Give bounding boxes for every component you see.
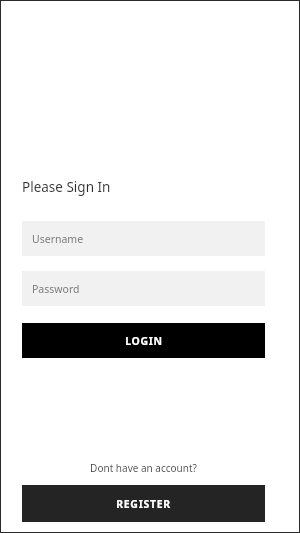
- button[interactable]: Password: [22, 271, 265, 306]
- staticText: REGISTER: [116, 497, 171, 511]
- button[interactable]: LOGIN: [22, 323, 265, 358]
- staticText: LOGIN: [125, 334, 163, 348]
- staticText: Please Sign In: [22, 178, 111, 196]
- button[interactable]: Dont have an account?: [22, 461, 265, 475]
- staticText: Password: [32, 282, 80, 296]
- button[interactable]: REGISTER: [22, 485, 265, 522]
- staticText: Username: [32, 232, 84, 246]
- other: Sign in screen: [0, 0, 300, 533]
- staticText: Dont have an account?: [90, 461, 197, 475]
- button[interactable]: Username: [22, 221, 265, 256]
